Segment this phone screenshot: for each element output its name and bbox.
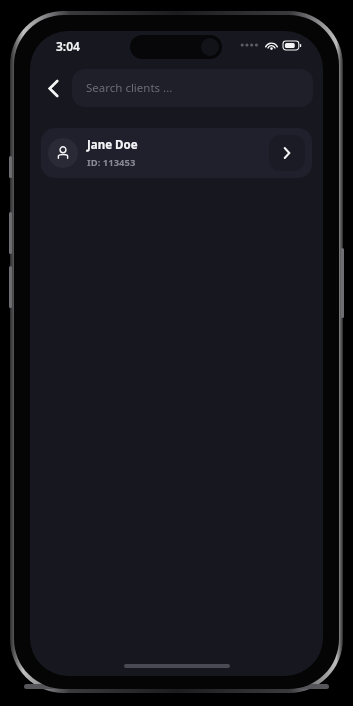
- staticText: Jane Doe: [87, 137, 138, 153]
- staticText: Search clients ...: [86, 80, 173, 96]
- button[interactable]: Jane Doe: [41, 128, 312, 178]
- staticText: ID: 113453: [87, 156, 136, 169]
- button[interactable]: Open client details: [269, 135, 305, 171]
- button[interactable]: Search clients ...: [72, 69, 313, 107]
- staticText: 3:04: [56, 38, 80, 54]
- button[interactable]: Back: [38, 73, 68, 103]
